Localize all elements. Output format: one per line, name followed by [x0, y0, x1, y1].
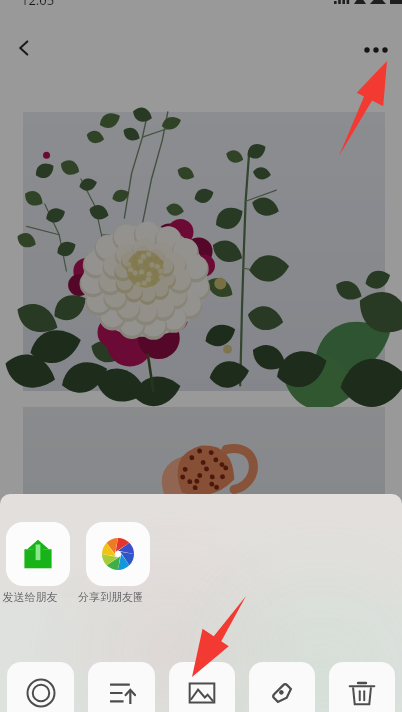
button[interactable]: Sort	[88, 662, 155, 712]
button[interactable]: Beautify	[7, 662, 74, 712]
staticText: 12:05	[21, 0, 55, 5]
button[interactable]: More options	[354, 28, 398, 72]
button[interactable]: Tag	[249, 662, 315, 712]
button[interactable]: 分享到朋友圈	[86, 522, 150, 586]
button[interactable]: Delete	[329, 662, 395, 712]
button[interactable]: 发送给朋友	[6, 522, 70, 586]
button[interactable]: Edit photo	[169, 662, 235, 712]
button[interactable]: Back	[4, 28, 44, 68]
staticText: 分享到朋友圈	[78, 590, 142, 604]
staticText: 发送给朋友	[0, 590, 62, 604]
